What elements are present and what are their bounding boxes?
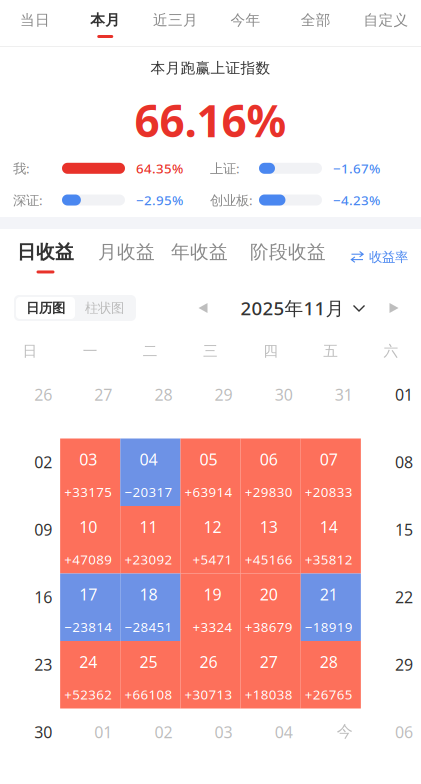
staticText: 02: [154, 721, 172, 743]
staticText: +66108: [124, 685, 172, 703]
staticText: 27: [94, 384, 112, 405]
staticText: −18919: [305, 618, 353, 636]
staticText: 23: [34, 654, 52, 675]
button[interactable]: 日收益: [17, 240, 74, 273]
staticText: 本月: [90, 11, 120, 29]
staticText: +3324: [193, 618, 233, 636]
staticText: 月收益: [98, 240, 155, 263]
staticText: +33175: [64, 483, 112, 501]
button[interactable]: 今年: [210, 0, 281, 46]
staticText: 17: [79, 584, 97, 605]
staticText: 11: [139, 516, 157, 537]
staticText: 27: [260, 651, 278, 672]
staticText: +18038: [245, 685, 293, 703]
button[interactable]: 自定义: [351, 0, 421, 46]
staticText: 10: [79, 516, 97, 537]
staticText: 16: [34, 586, 52, 608]
button[interactable]: 近三月: [140, 0, 210, 46]
staticText: 自定义: [363, 11, 408, 29]
staticText: 64.35%: [136, 159, 183, 177]
staticText: 29: [215, 384, 233, 405]
staticText: 02: [34, 451, 52, 473]
staticText: 阶段收益: [250, 240, 326, 263]
staticText: −20317: [124, 483, 172, 501]
staticText: 26: [34, 384, 52, 405]
button[interactable]: 本月: [70, 0, 140, 46]
staticText: 四: [263, 342, 278, 360]
staticText: 29: [395, 654, 413, 675]
staticText: 柱状图: [85, 300, 124, 316]
staticText: 深证:: [13, 191, 43, 209]
staticText: 2025年11月: [240, 296, 344, 320]
button[interactable]: Previous month: [173, 293, 233, 323]
staticText: 26: [200, 651, 218, 672]
staticText: +35812: [305, 550, 353, 568]
staticText: 31: [335, 384, 353, 405]
staticText: 日历图: [26, 300, 65, 316]
staticText: 三: [203, 342, 218, 360]
staticText: +38679: [245, 618, 293, 636]
staticText: 一: [83, 342, 98, 360]
staticText: 04: [139, 449, 157, 470]
staticText: 30: [275, 384, 293, 405]
button[interactable]: 全部: [281, 0, 351, 46]
staticText: +45166: [245, 550, 293, 568]
staticText: 收益率: [369, 249, 408, 265]
staticText: 近三月: [153, 11, 198, 29]
staticText: −2.95%: [136, 191, 183, 209]
button[interactable]: 2025年11月: [233, 293, 373, 323]
staticText: 19: [204, 584, 222, 605]
staticText: 21: [320, 584, 338, 605]
button[interactable]: 当日: [0, 0, 70, 46]
staticText: 当日: [20, 11, 50, 29]
staticText: +29830: [245, 483, 293, 501]
staticText: 今年: [231, 11, 261, 29]
staticText: 06: [260, 449, 278, 470]
staticText: 五: [323, 342, 338, 360]
staticText: 六: [383, 342, 398, 360]
staticText: 20: [260, 584, 278, 605]
staticText: 01: [395, 384, 413, 405]
staticText: 本月跑赢上证指数: [150, 59, 270, 77]
staticText: +20833: [305, 483, 353, 501]
staticText: 日收益: [17, 240, 74, 263]
staticText: +63914: [185, 483, 233, 501]
staticText: +52362: [64, 685, 112, 703]
staticText: +23092: [124, 550, 172, 568]
staticText: 28: [154, 384, 172, 405]
button[interactable]: 阶段收益: [250, 240, 326, 273]
staticText: 我:: [13, 159, 30, 177]
staticText: 08: [395, 451, 413, 473]
staticText: 25: [139, 651, 157, 672]
staticText: 15: [395, 519, 413, 540]
staticText: −23814: [64, 618, 112, 636]
button[interactable]: 年收益: [171, 240, 228, 273]
staticText: 18: [139, 584, 157, 605]
staticText: 01: [94, 721, 112, 743]
staticText: +5471: [193, 550, 233, 568]
staticText: 22: [395, 586, 413, 608]
staticText: 06: [395, 721, 413, 743]
staticText: −28451: [124, 618, 172, 636]
staticText: −1.67%: [333, 159, 380, 177]
staticText: 年收益: [171, 240, 228, 263]
button[interactable]: 收益率: [351, 249, 408, 265]
staticText: 今: [337, 721, 353, 741]
staticText: 12: [204, 516, 222, 537]
staticText: +26765: [305, 685, 353, 703]
button[interactable]: Next month: [373, 293, 415, 323]
staticText: 07: [320, 449, 338, 470]
staticText: 03: [215, 721, 233, 743]
staticText: 03: [79, 449, 97, 470]
staticText: 13: [260, 516, 278, 537]
staticText: 上证:: [210, 159, 240, 177]
button[interactable]: 柱状图: [75, 297, 134, 319]
staticText: 05: [200, 449, 218, 470]
button[interactable]: 月收益: [98, 240, 155, 273]
button[interactable]: 日历图: [16, 297, 75, 319]
staticText: 24: [79, 651, 97, 672]
staticText: 14: [320, 516, 338, 537]
staticText: 04: [275, 721, 293, 743]
staticText: −4.23%: [333, 191, 380, 209]
staticText: 28: [320, 651, 338, 672]
